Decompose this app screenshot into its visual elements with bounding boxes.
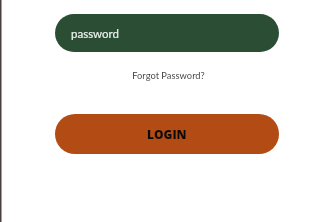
button[interactable]: LOGIN <box>55 114 279 154</box>
button[interactable]: Password input field <box>55 14 279 52</box>
staticText: password <box>71 27 119 41</box>
staticText: LOGIN <box>147 126 187 142</box>
button[interactable]: Forgot Password? <box>128 68 209 83</box>
